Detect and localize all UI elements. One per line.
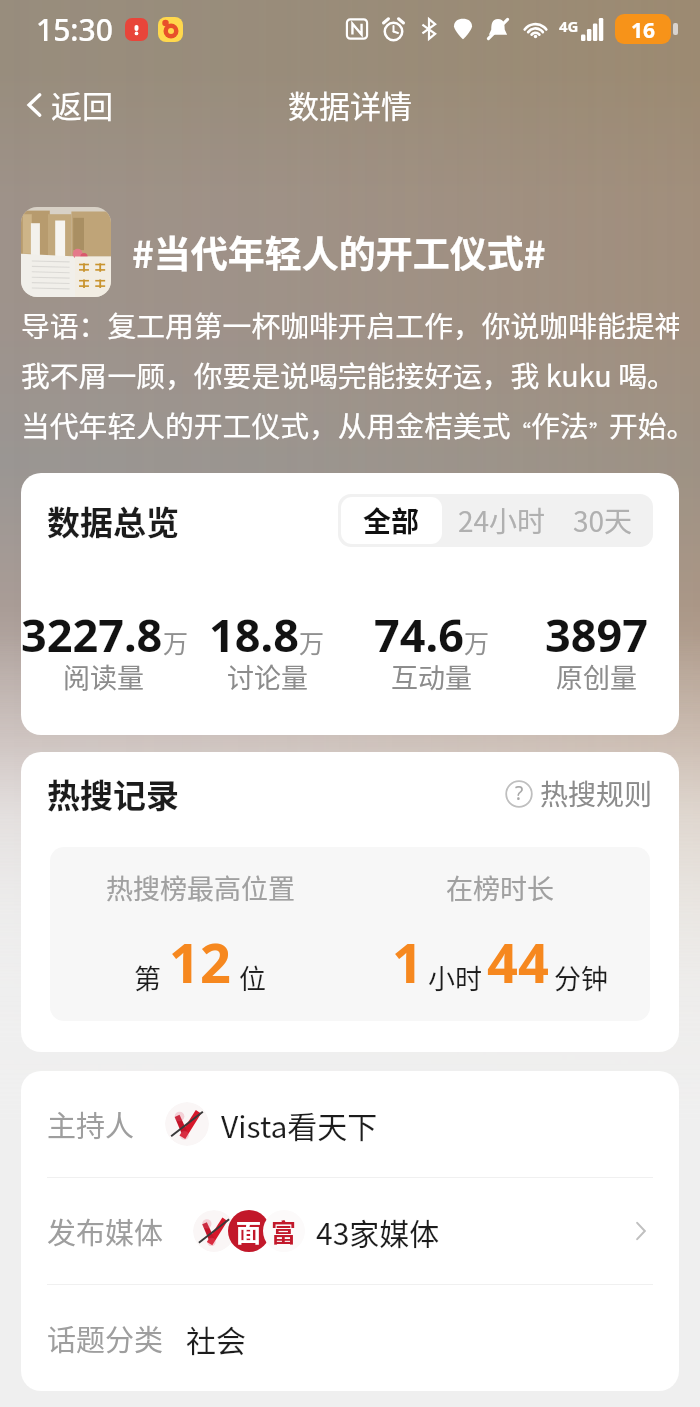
staticText: 分钟 xyxy=(554,958,608,997)
staticText: 数据总览 xyxy=(47,497,179,545)
staticText: 数据详情 xyxy=(288,82,412,127)
staticText: 在榜时长 xyxy=(446,868,554,907)
staticText: Vista看天下 xyxy=(221,1103,378,1146)
button[interactable]: 全部 xyxy=(341,497,442,544)
staticText: 全部 xyxy=(363,500,420,541)
staticText: 第 xyxy=(134,958,161,997)
staticText: #当代年轻人的开工仪式# xyxy=(132,225,546,279)
staticText: 我不屑一顾，你要是说喝完能接好运，我 kuku 喝。 xyxy=(21,354,676,396)
staticText: ” xyxy=(589,417,609,446)
staticText: 74.6 xyxy=(374,604,464,665)
staticText: 热搜记录 xyxy=(47,770,179,818)
staticText: 发布媒体 xyxy=(47,1210,164,1252)
staticText: 小时 xyxy=(428,958,482,997)
staticText: 阅读量 xyxy=(63,657,144,696)
staticText: 位 xyxy=(239,958,266,997)
staticText: 3227.8 xyxy=(21,604,163,665)
button[interactable]: 返回 xyxy=(14,72,119,137)
staticText: 返回 xyxy=(51,82,113,127)
staticText: 主持人 xyxy=(47,1103,135,1145)
staticText: 万 xyxy=(163,624,185,660)
staticText: 原创量 xyxy=(556,657,637,696)
staticText: 面 xyxy=(236,1213,262,1249)
staticText: “ xyxy=(511,417,531,446)
button[interactable]: 30天 xyxy=(559,494,653,547)
staticText: 3897 xyxy=(545,604,648,665)
button[interactable]: 发布媒体 xyxy=(21,1178,679,1284)
staticText: 互动量 xyxy=(391,657,472,696)
staticText: 导语：复工用第一杯咖啡开启工作，你说咖啡能提神 xyxy=(21,304,679,346)
staticText: 万 xyxy=(464,624,490,660)
staticText: 12 xyxy=(169,925,231,999)
staticText: 16 xyxy=(631,16,656,42)
staticText: 1 xyxy=(392,925,423,999)
staticText: 万 xyxy=(299,624,325,660)
staticText: 24小时 xyxy=(458,500,546,541)
staticText: ? xyxy=(515,780,524,806)
button[interactable]: 24小时 xyxy=(445,494,559,547)
staticText: 30天 xyxy=(573,500,633,541)
staticText: 热搜规则 xyxy=(540,773,653,814)
button[interactable]: 话题分类 xyxy=(21,1285,679,1391)
staticText: 社会 xyxy=(186,1317,246,1360)
staticText: 热搜榜最高位置 xyxy=(106,868,295,907)
button[interactable]: ? xyxy=(501,769,657,818)
staticText: 18.8 xyxy=(209,604,299,665)
staticText: 当代年轻人的开工仪式，从用金桔美式 xyxy=(21,404,511,446)
staticText: 话题分类 xyxy=(47,1317,164,1359)
staticText: 44 xyxy=(487,925,549,999)
staticText: 富 xyxy=(271,1213,297,1249)
staticText: 15:30 xyxy=(36,9,113,50)
staticText: 开始。 xyxy=(609,404,679,446)
staticText: 作法 xyxy=(531,404,589,446)
button[interactable]: 主持人 xyxy=(21,1071,679,1177)
staticText: 4G xyxy=(559,16,579,36)
staticText: 43家媒体 xyxy=(316,1210,440,1253)
staticText: 讨论量 xyxy=(227,657,308,696)
